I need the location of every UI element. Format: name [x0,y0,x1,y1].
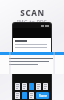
button[interactable]: Page thumbnail [43,83,48,90]
button[interactable]: Save [36,92,49,99]
button[interactable] [0,52,64,74]
button[interactable]: Page thumbnail [36,83,41,90]
button[interactable]: Page thumbnail [29,92,34,99]
button[interactable]: Selected page [22,92,27,99]
staticText: SCAN [20,7,45,18]
button[interactable]: Selected page [29,83,34,90]
staticText: IMG to PDF [17,19,47,26]
button[interactable]: Page thumbnail [15,83,20,90]
button[interactable]: Page thumbnail [15,92,20,99]
staticText: Save [39,93,47,98]
button[interactable]: Page thumbnail [22,83,27,90]
